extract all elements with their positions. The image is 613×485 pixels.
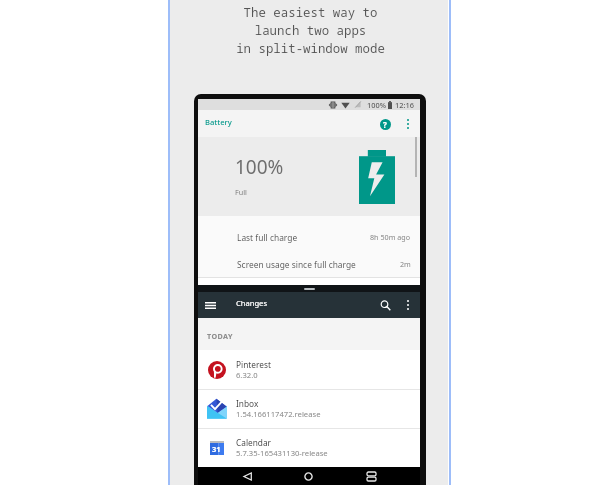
button[interactable]: More options <box>399 115 417 133</box>
staticText: The easiest way to launch two apps in sp… <box>236 4 385 57</box>
staticText: Changes <box>236 298 268 308</box>
button[interactable]: Search <box>376 296 394 314</box>
staticText: Calendar <box>236 437 272 448</box>
staticText: Full <box>235 187 247 197</box>
staticText: Pinterest <box>236 359 271 370</box>
button[interactable]: Pinterest <box>198 350 420 389</box>
button[interactable]: Home <box>295 467 321 485</box>
button[interactable]: Help <box>376 115 394 133</box>
staticText: Screen usage since full charge <box>237 259 356 270</box>
staticText: 100% <box>235 154 284 180</box>
button[interactable]: Open navigation drawer <box>201 296 219 314</box>
staticText: 100% <box>367 100 386 110</box>
staticText: 8h 50m ago <box>370 232 411 242</box>
button[interactable]: Inbox <box>198 389 420 428</box>
staticText: 6.32.0 <box>236 370 258 380</box>
staticText: 2m <box>400 259 411 269</box>
button[interactable]: 31 <box>198 428 420 467</box>
button[interactable]: More options <box>399 296 417 314</box>
staticText: ? <box>383 119 387 130</box>
staticText: 31 <box>212 444 221 454</box>
staticText: Inbox <box>236 398 259 409</box>
staticText: Last full charge <box>237 232 298 243</box>
staticText: 12:16 <box>395 100 414 110</box>
button[interactable]: Last full charge <box>198 223 420 251</box>
staticText: TODAY <box>207 331 233 341</box>
button[interactable]: Recent apps <box>358 467 384 485</box>
staticText: 1.54.166117472.release <box>236 409 321 419</box>
staticText: 5.7.35-165431130-release <box>236 448 328 458</box>
button[interactable]: Back <box>234 467 260 485</box>
staticText: Battery <box>205 117 232 127</box>
button[interactable]: Screen usage since full charge <box>198 250 420 278</box>
